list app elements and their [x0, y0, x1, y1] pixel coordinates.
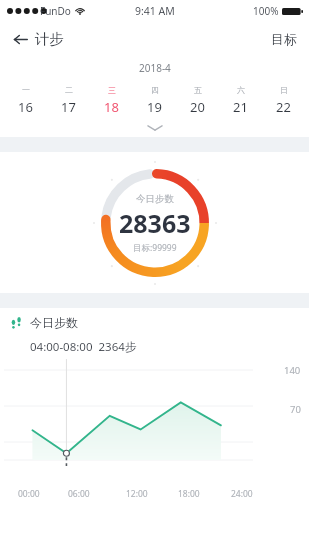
staticText: 18:00	[178, 488, 200, 500]
staticText: 计步	[35, 30, 64, 48]
button[interactable]: 六	[219, 83, 262, 118]
staticText: 五	[194, 85, 202, 95]
staticText: 24:00	[231, 488, 253, 500]
staticText: 20	[190, 98, 205, 116]
staticText: 2018-4	[139, 61, 171, 75]
button[interactable]: Expand calendar	[0, 122, 309, 134]
staticText: 18	[104, 98, 119, 116]
staticText: FunDo	[40, 4, 71, 18]
staticText: 今日步数	[30, 315, 78, 330]
button[interactable]: 三	[90, 83, 133, 118]
button[interactable]: 目标	[259, 24, 309, 54]
staticText: 12:00	[126, 488, 148, 500]
button[interactable]: Back	[0, 25, 74, 53]
staticText: 100%	[253, 4, 279, 18]
button[interactable]: 五	[176, 83, 219, 118]
staticText: 六	[237, 85, 245, 95]
staticText: 四	[151, 85, 159, 95]
button[interactable]: 二	[47, 83, 90, 118]
staticText: 21	[233, 98, 248, 116]
other: Back	[13, 32, 28, 47]
staticText: 22	[276, 98, 291, 116]
staticText: 28363	[119, 206, 191, 240]
staticText: 日	[280, 85, 288, 95]
staticText: 140	[284, 364, 301, 377]
staticText: 二	[65, 85, 73, 95]
staticText: 00:00	[18, 488, 40, 500]
button[interactable]: 一	[4, 83, 47, 118]
staticText: 06:00	[68, 488, 90, 500]
staticText: 9:41 AM	[135, 4, 175, 18]
staticText: 今日步数	[136, 193, 174, 205]
staticText: 目标	[271, 31, 297, 47]
staticText: 70	[290, 403, 301, 416]
other: Expand calendar	[144, 122, 166, 134]
staticText: 17	[61, 98, 76, 116]
staticText: 目标:99999	[133, 242, 177, 254]
button[interactable]: 日	[262, 83, 305, 118]
staticText: 19	[147, 98, 162, 116]
staticText: 04:00-08:00 2364步	[30, 339, 137, 355]
button[interactable]: 四	[133, 83, 176, 118]
staticText: 16	[18, 98, 33, 116]
staticText: 一	[22, 85, 30, 95]
staticText: 三	[108, 85, 116, 95]
